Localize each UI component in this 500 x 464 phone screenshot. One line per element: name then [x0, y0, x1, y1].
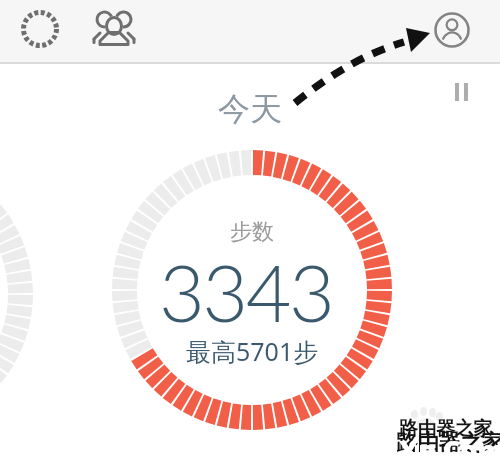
button[interactable] — [434, 12, 470, 48]
staticText: 3343 — [159, 244, 333, 339]
staticText: jXn.Com — [390, 431, 500, 464]
button[interactable] — [455, 83, 468, 101]
button[interactable] — [91, 6, 137, 52]
staticText: 最高5701步 — [186, 334, 319, 368]
button[interactable]: 今天 — [218, 89, 282, 129]
button[interactable] — [18, 7, 62, 51]
staticText: 路由器之家 — [396, 429, 500, 457]
staticText: 路由器之家 — [399, 417, 492, 441]
staticText: 步数 — [230, 218, 274, 246]
